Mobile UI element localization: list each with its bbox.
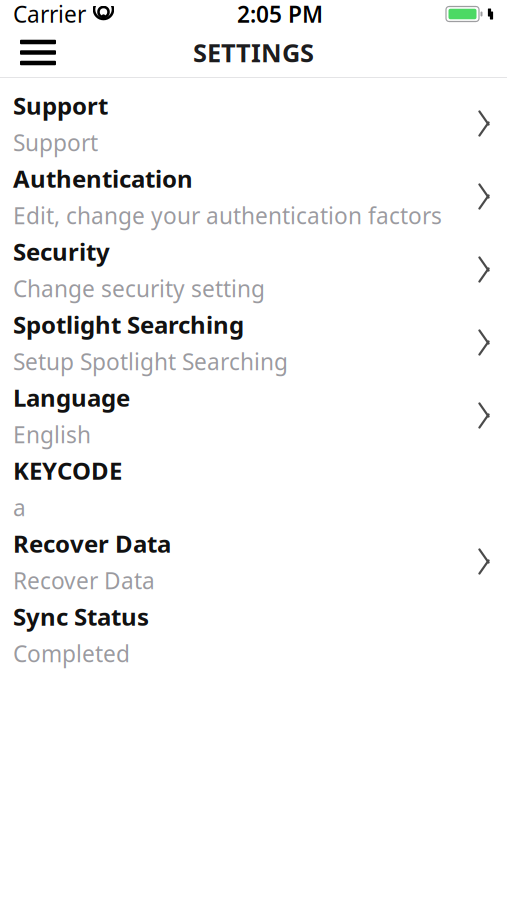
button[interactable]: Authentication <box>0 160 507 233</box>
staticText: Authentication <box>13 162 193 194</box>
staticText: Recover Data <box>13 527 171 559</box>
staticText: Carrier <box>13 0 86 29</box>
staticText: SETTINGS <box>193 36 314 69</box>
staticText: Security <box>13 235 110 267</box>
button[interactable]: KEYCODE <box>0 452 507 525</box>
button[interactable]: Security <box>0 233 507 306</box>
staticText: Completed <box>13 638 130 668</box>
staticText: Support <box>13 127 98 157</box>
button[interactable]: Spotlight Searching <box>0 306 507 379</box>
staticText: Language <box>13 381 130 413</box>
staticText: Change security setting <box>13 273 265 303</box>
staticText: Recover Data <box>13 565 155 595</box>
staticText: Spotlight Searching <box>13 308 244 340</box>
button[interactable]: Support <box>0 87 507 160</box>
staticText: Sync Status <box>13 600 149 632</box>
staticText: Setup Spotlight Searching <box>13 346 288 376</box>
button[interactable]: Language <box>0 379 507 452</box>
staticText: Edit, change your authentication factors <box>13 200 442 230</box>
button[interactable]: Sync Status <box>0 598 507 671</box>
button[interactable]: Menu <box>8 28 68 76</box>
staticText: 2:05 PM <box>237 0 323 29</box>
staticText: a <box>13 492 26 522</box>
staticText: KEYCODE <box>13 454 122 486</box>
staticText: Support <box>13 89 108 121</box>
button[interactable]: Recover Data <box>0 525 507 598</box>
staticText: English <box>13 419 91 449</box>
